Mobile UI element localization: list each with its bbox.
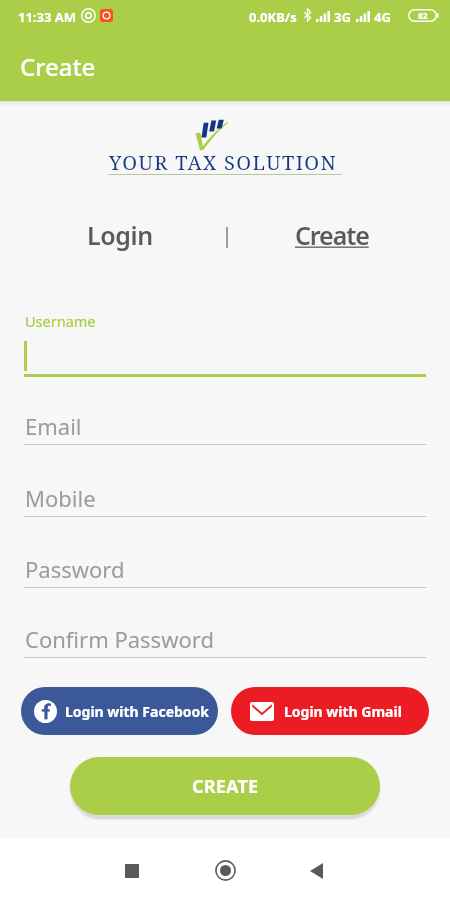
button[interactable]: Username bbox=[0, 305, 450, 380]
staticText: Login with Gmail bbox=[284, 702, 402, 721]
staticText: Create bbox=[295, 218, 369, 252]
button[interactable]: Login with Facebook bbox=[21, 687, 218, 735]
staticText: 11:33 AM bbox=[18, 8, 77, 26]
staticText: Password bbox=[25, 554, 125, 584]
button[interactable]: Confirm Password bbox=[0, 619, 450, 664]
button[interactable]: CREATE bbox=[70, 757, 380, 815]
staticText: Login bbox=[87, 218, 153, 252]
button[interactable]: Mobile bbox=[0, 478, 450, 523]
button[interactable]: Recent apps bbox=[108, 847, 156, 895]
staticText: 82 bbox=[418, 10, 428, 22]
button[interactable]: Home bbox=[201, 846, 249, 894]
button[interactable]: Email bbox=[0, 406, 450, 451]
staticText: 0.0KB/s bbox=[249, 8, 297, 26]
staticText: | bbox=[221, 219, 234, 249]
button[interactable]: Login with Gmail bbox=[231, 687, 429, 735]
staticText: Username bbox=[25, 311, 96, 331]
staticText: 4G bbox=[374, 8, 391, 26]
button[interactable]: Login bbox=[73, 212, 167, 258]
button[interactable]: Back bbox=[292, 847, 340, 895]
staticText: Login with Facebook bbox=[65, 702, 210, 721]
staticText: CREATE bbox=[192, 774, 259, 799]
button[interactable]: Password bbox=[0, 549, 450, 594]
staticText: YOUR TAX SOLUTION bbox=[109, 149, 338, 176]
staticText: Confirm Password bbox=[25, 624, 214, 654]
staticText: Email bbox=[25, 411, 82, 441]
staticText: Create bbox=[20, 50, 96, 83]
button[interactable]: Create bbox=[281, 212, 383, 258]
staticText: 3G bbox=[334, 8, 351, 26]
staticText: Mobile bbox=[25, 483, 96, 513]
